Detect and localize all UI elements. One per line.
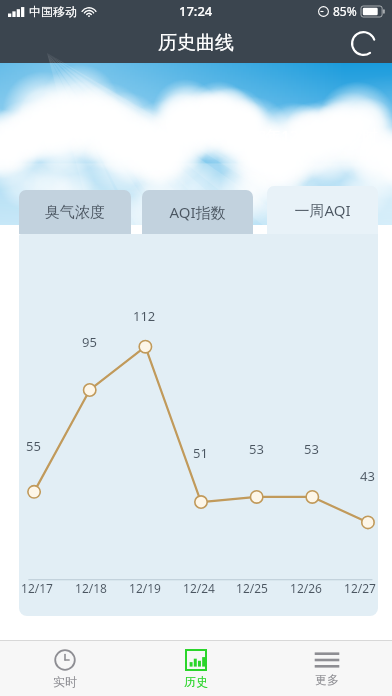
staticText: 85%: [333, 3, 357, 19]
staticText: 51: [193, 444, 208, 462]
button[interactable]: 历史: [130, 641, 261, 696]
staticText: 中国移动: [29, 4, 77, 19]
staticText: 17:24: [179, 2, 213, 20]
staticText: 更多: [315, 672, 339, 687]
staticText: 12/17: [21, 580, 53, 596]
button[interactable]: Refresh: [348, 28, 378, 58]
staticText: 43: [360, 467, 375, 485]
staticText: 53: [249, 440, 264, 458]
staticText: 一周AQI: [294, 200, 351, 220]
staticText: 53: [304, 440, 319, 458]
button[interactable]: 更多: [261, 641, 392, 696]
button[interactable]: 实时: [0, 641, 130, 696]
staticText: 12/24: [183, 580, 215, 596]
staticText: 55: [26, 437, 41, 455]
staticText: 12/26: [290, 580, 322, 596]
staticText: 95: [82, 333, 97, 351]
button[interactable]: 臭气浓度: [19, 190, 131, 234]
staticText: 12/25: [236, 580, 268, 596]
staticText: 12/27: [344, 580, 376, 596]
button[interactable]: AQI指数: [142, 190, 253, 234]
button[interactable]: 一周AQI: [267, 186, 378, 234]
staticText: 12/18: [75, 580, 107, 596]
staticText: 臭气浓度: [45, 203, 105, 222]
staticText: AQI指数: [169, 202, 226, 222]
staticText: 12/19: [129, 580, 161, 596]
staticText: 112: [133, 307, 156, 325]
staticText: 实时: [53, 674, 77, 689]
staticText: 历史: [184, 674, 208, 689]
staticText: 历史曲线: [158, 31, 234, 55]
